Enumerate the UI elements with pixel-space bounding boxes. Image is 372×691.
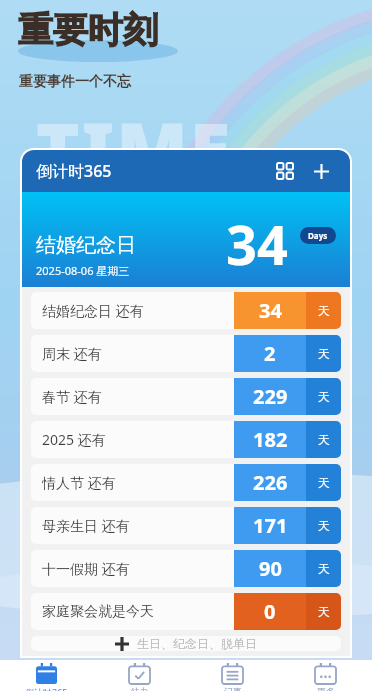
staticText: 记事 [224,686,242,691]
button[interactable]: 家庭聚会就是今天 [31,593,341,630]
button[interactable]: Grid view [270,156,300,186]
staticText: 天 [318,604,330,619]
staticText: 结婚纪念日 [36,233,136,258]
button[interactable]: 倒计时365 [0,660,93,691]
staticText: 情人节 还有 [42,473,234,492]
staticText: 倒计时365 [36,160,112,182]
staticText: 天 [318,432,330,447]
button[interactable]: 十一假期 还有 [31,550,341,587]
button[interactable]: 结婚纪念日 还有 [31,292,341,329]
staticText: 2 [264,340,276,367]
button[interactable]: 结婚纪念日 [22,192,350,287]
staticText: 家庭聚会就是今天 [42,603,234,621]
staticText: 天 [318,303,330,318]
staticText: 229 [253,383,288,410]
staticText: 结婚纪念日 还有 [42,301,234,320]
staticText: 182 [253,426,288,453]
button[interactable]: 周末 还有 [31,335,341,372]
staticText: 34 [226,207,288,281]
button[interactable]: Add countdown [306,156,336,186]
staticText: 天 [318,475,330,490]
staticText: 十一假期 还有 [42,559,234,578]
staticText: 更多 [317,686,335,691]
staticText: 天 [318,518,330,533]
staticText: 171 [253,512,288,539]
staticText: 春节 还有 [42,387,234,406]
staticText: 母亲生日 还有 [42,516,234,535]
staticText: 重要事件一个不忘 [19,73,131,91]
button[interactable]: 待办 [93,660,186,691]
button[interactable]: 春节 还有 [31,378,341,415]
staticText: 倒计时365 [25,686,68,691]
staticText: 0 [264,598,276,625]
button[interactable]: 记事 [186,660,279,691]
staticText: 天 [318,561,330,576]
staticText: 34 [259,297,282,324]
button[interactable]: 情人节 还有 [31,464,341,501]
staticText: 226 [253,469,288,496]
staticText: 重要时刻 [18,8,158,52]
staticText: 2025 还有 [42,430,234,449]
button[interactable]: 2025 还有 [31,421,341,458]
staticText: Days [308,230,328,241]
button[interactable]: 母亲生日 还有 [31,507,341,544]
staticText: 待办 [131,686,149,691]
button[interactable]: 更多 [279,660,372,691]
staticText: 周末 还有 [42,344,234,363]
staticText: 天 [318,389,330,404]
staticText: TIME [36,98,233,199]
staticText: 90 [259,555,282,582]
button[interactable]: 生日、纪念日、脱单日 [31,636,341,651]
staticText: 2025-08-06 星期三 [36,263,130,278]
staticText: 天 [318,346,330,361]
staticText: 生日、纪念日、脱单日 [137,636,257,651]
